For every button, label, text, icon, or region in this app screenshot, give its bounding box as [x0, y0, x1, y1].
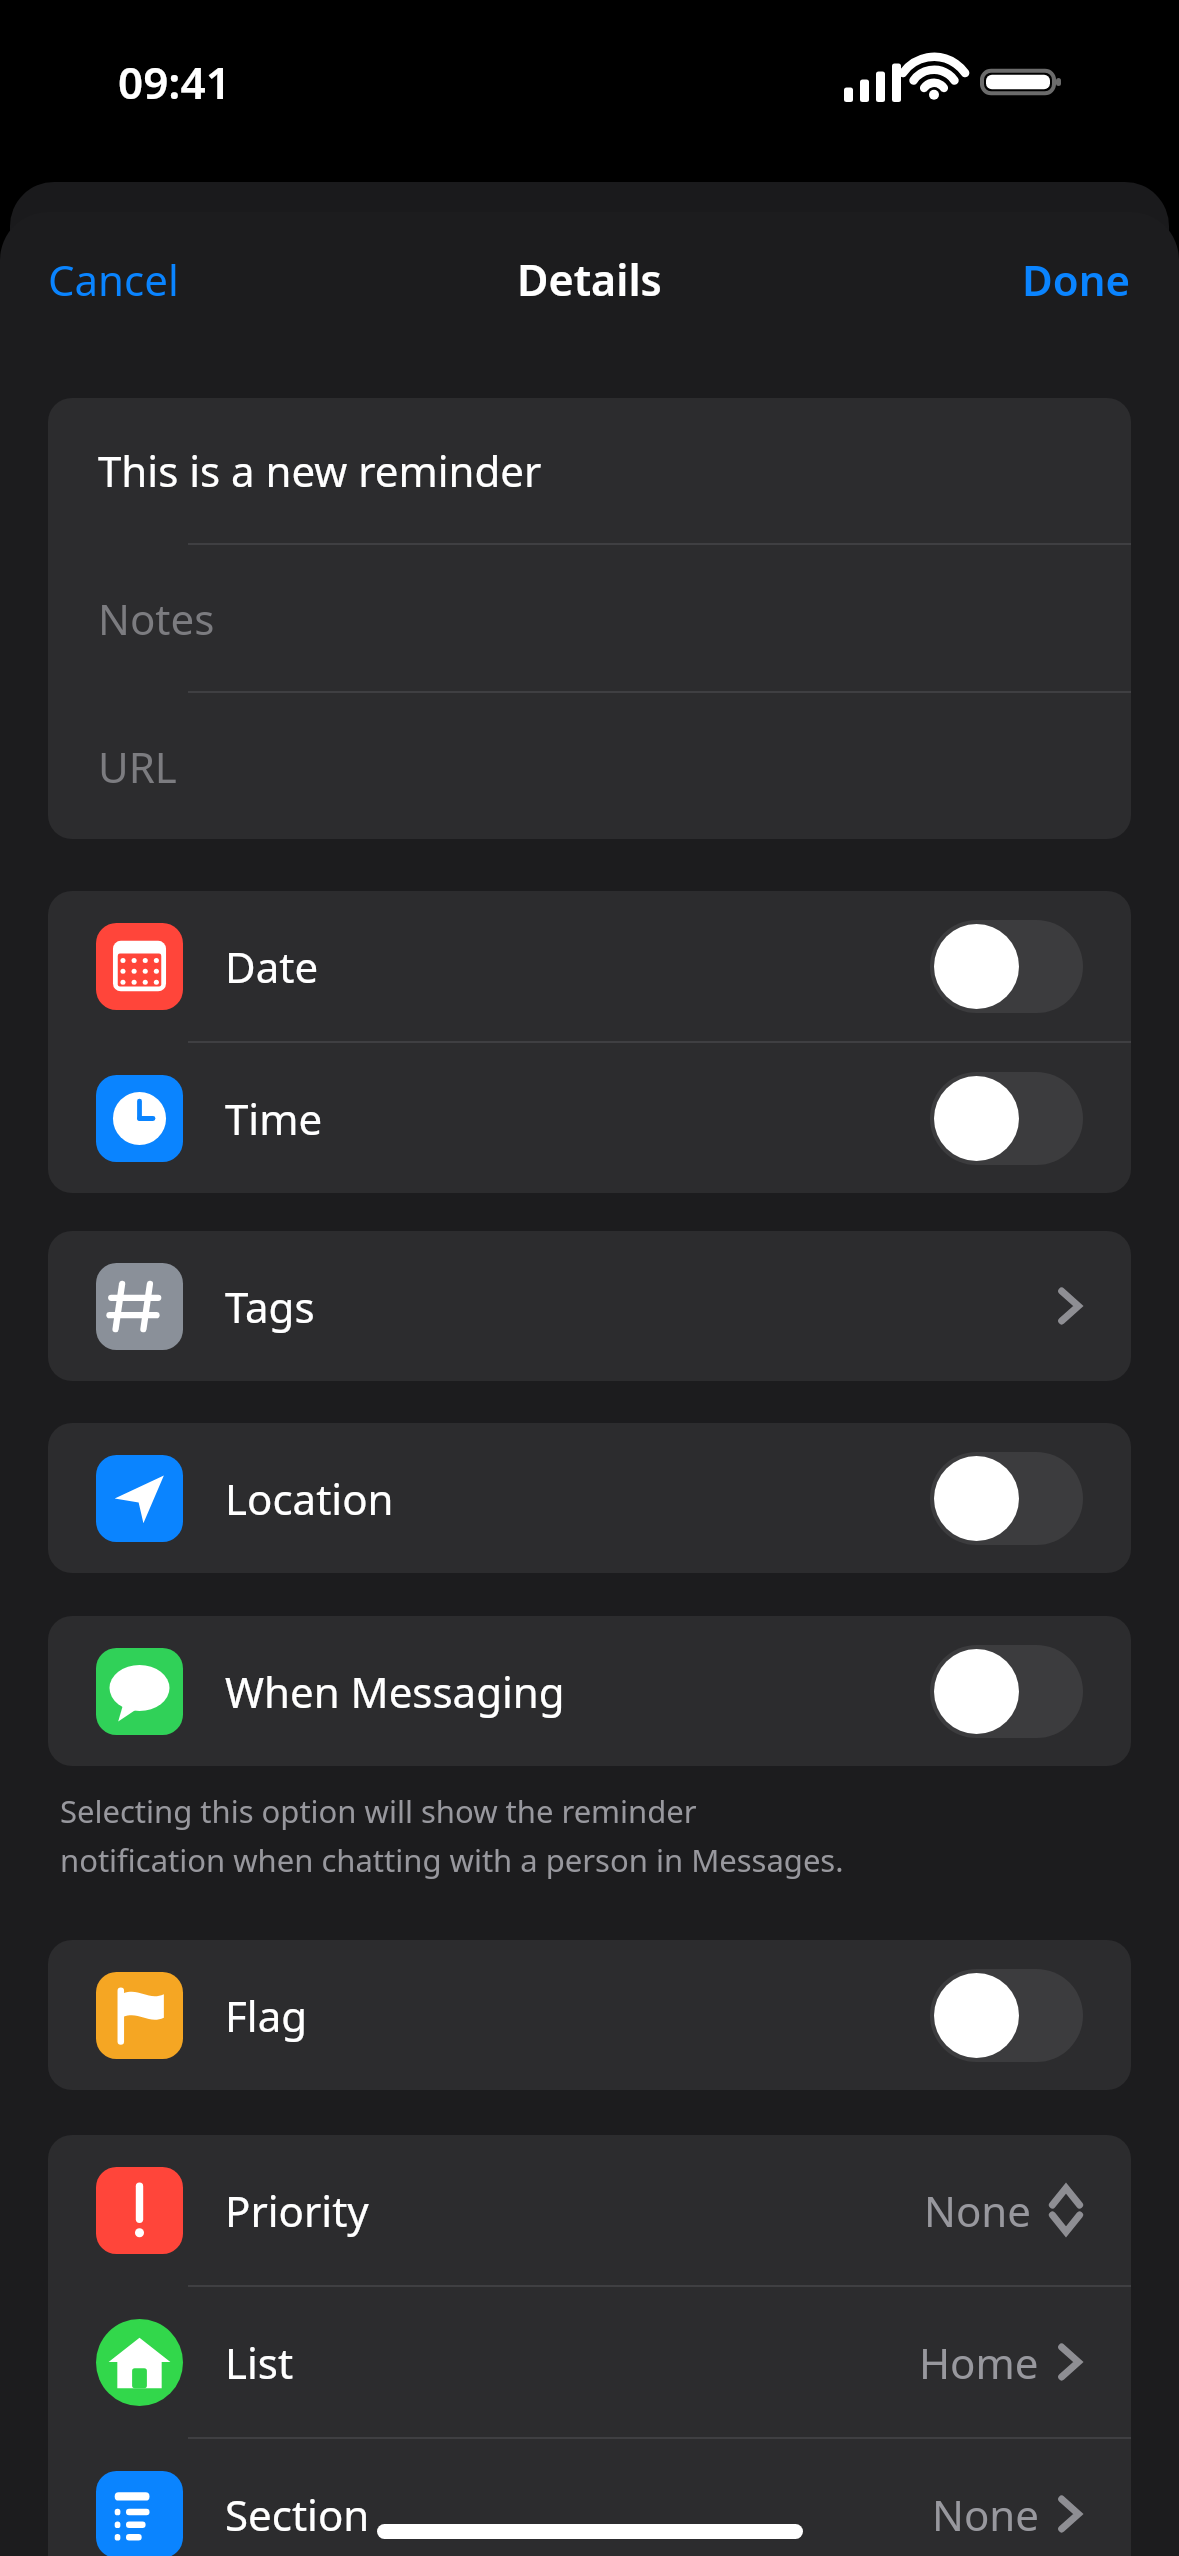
staticText: Home	[919, 2334, 1039, 2391]
staticText: Cancel	[48, 251, 179, 308]
staticText: List	[225, 2334, 294, 2391]
button[interactable]: Tags	[48, 1231, 1131, 1381]
staticText: URL	[98, 738, 177, 795]
staticText: Section	[225, 2486, 370, 2543]
button[interactable]: Date	[48, 891, 1131, 1041]
staticText: This is a new reminder	[98, 442, 542, 499]
staticText: None	[932, 2486, 1039, 2543]
button[interactable]: Toggle	[930, 1969, 1083, 2062]
button[interactable]: Toggle	[930, 920, 1083, 1013]
staticText: Priority	[225, 2182, 369, 2239]
staticText: Done	[1022, 251, 1131, 308]
staticText: Tags	[225, 1278, 315, 1335]
button[interactable]: Toggle	[930, 1072, 1083, 1165]
staticText: Details	[517, 250, 662, 309]
button[interactable]: Priority	[48, 2135, 1131, 2285]
button[interactable]: Done	[998, 235, 1179, 324]
button[interactable]: Notes	[48, 545, 1131, 691]
staticText: Time	[225, 1090, 323, 1147]
button[interactable]: URL	[48, 693, 1131, 839]
staticText: Location	[225, 1470, 394, 1527]
button[interactable]: Cancel	[0, 235, 203, 324]
button[interactable]: Toggle	[930, 1645, 1083, 1738]
button[interactable]: List	[48, 2287, 1131, 2437]
staticText: Notes	[98, 590, 215, 647]
staticText: When Messaging	[225, 1663, 565, 1720]
button[interactable]: This is a new reminder	[48, 398, 1131, 543]
button[interactable]: Toggle	[930, 1452, 1083, 1545]
staticText: None	[924, 2182, 1031, 2239]
staticText: Selecting this option will show the remi…	[60, 1790, 844, 1882]
staticText: 09:41	[118, 52, 231, 112]
button[interactable]: Flag	[48, 1940, 1131, 2090]
staticText: Flag	[225, 1987, 308, 2044]
button[interactable]: When Messaging	[48, 1616, 1131, 1766]
button[interactable]: Time	[48, 1043, 1131, 1193]
button[interactable]: Section	[48, 2439, 1131, 2556]
staticText: Date	[225, 938, 319, 995]
button[interactable]: Location	[48, 1423, 1131, 1573]
